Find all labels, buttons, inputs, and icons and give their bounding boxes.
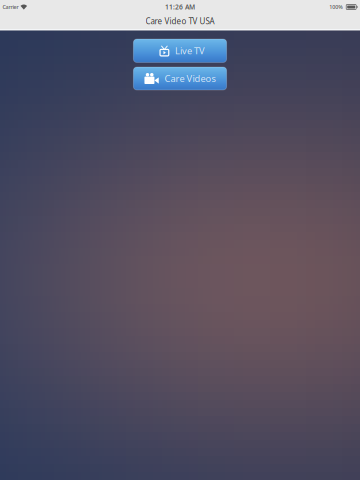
staticText: Carrier	[2, 3, 18, 11]
staticText: Live TV	[175, 45, 205, 57]
button[interactable]: Live TV	[133, 39, 227, 62]
staticText: Care Videos	[165, 72, 216, 85]
staticText: 100%	[329, 3, 343, 11]
staticText: 11:26 AM	[165, 3, 195, 11]
button[interactable]: Care Videos	[133, 67, 227, 90]
staticText: Care Video TV USA	[145, 16, 214, 26]
